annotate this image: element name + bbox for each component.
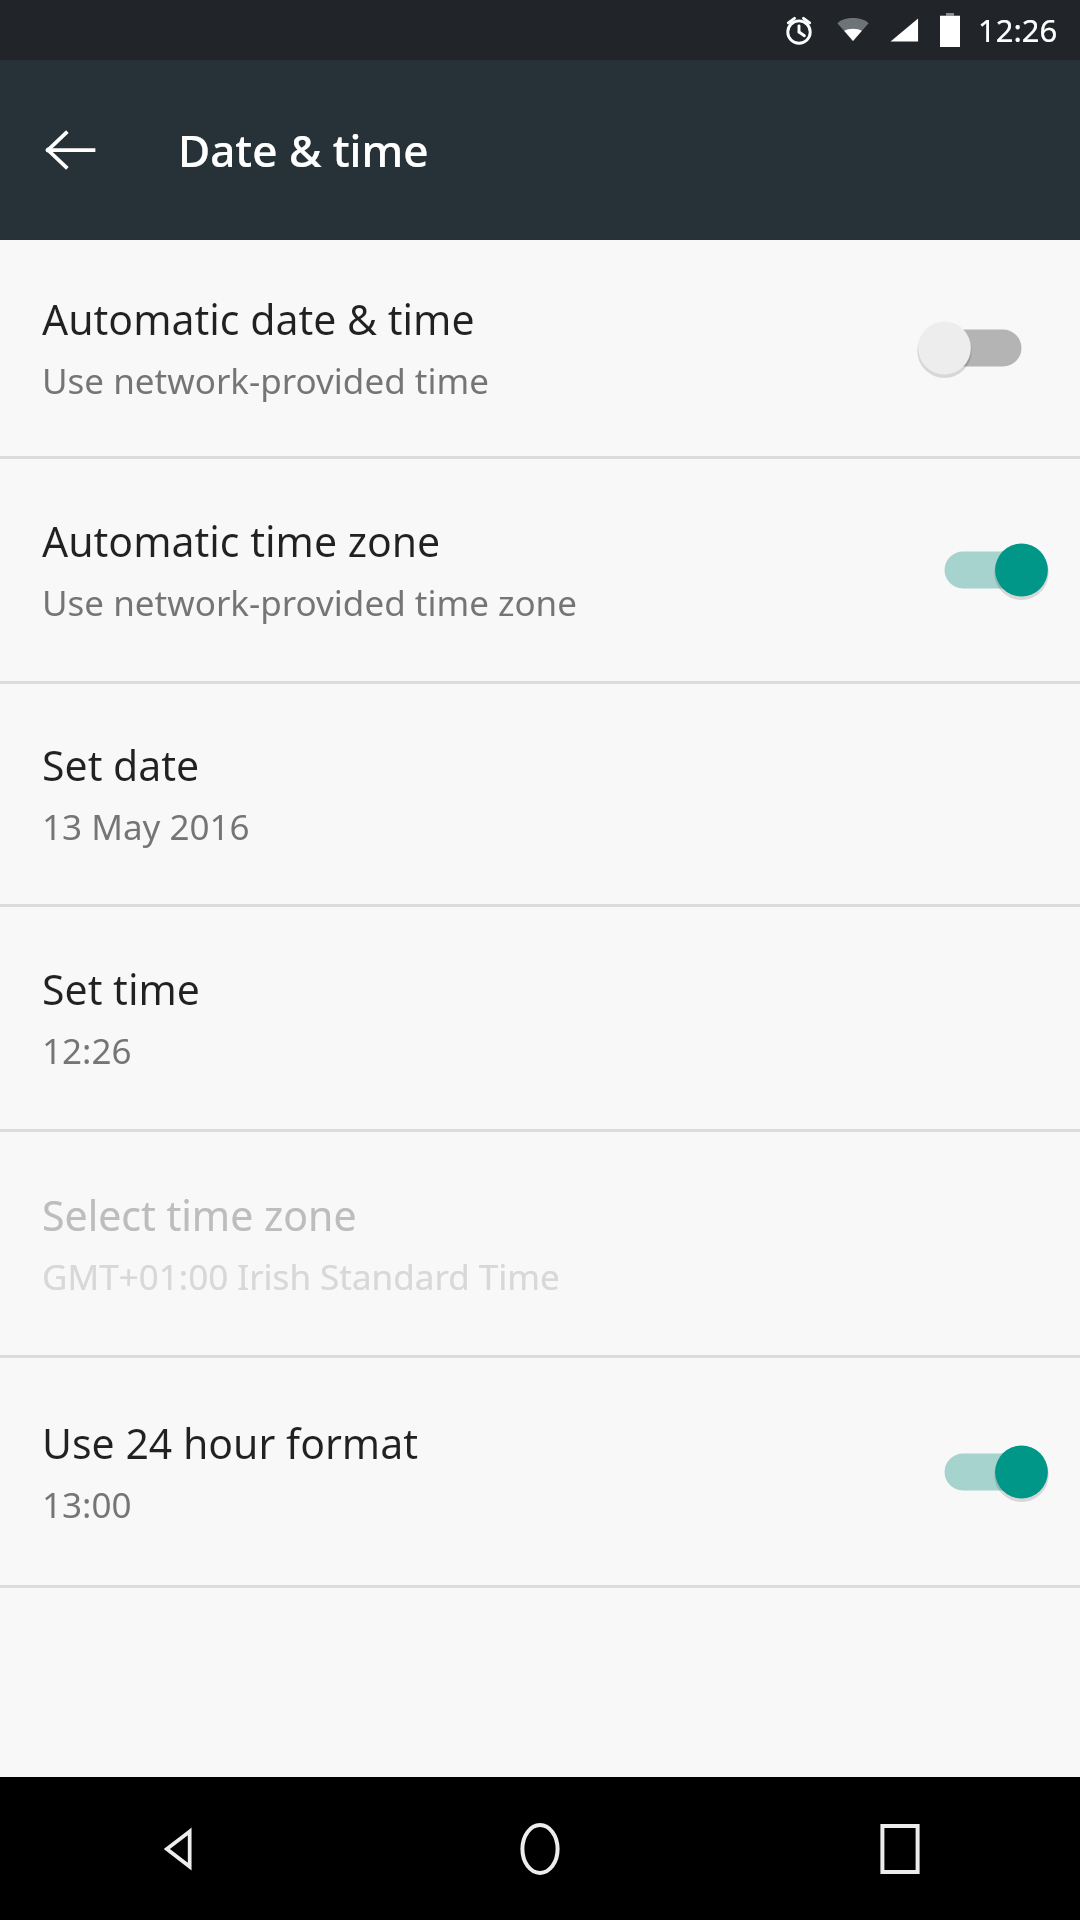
button[interactable]: Use 24 hour format (0, 1358, 1080, 1585)
staticText: Use network-provided time (42, 357, 489, 405)
button[interactable]: Select time zone (0, 1132, 1080, 1355)
button[interactable]: Set date (0, 684, 1080, 904)
staticText: GMT+01:00 Irish Standard Time (42, 1253, 560, 1301)
staticText: Select time zone (42, 1187, 357, 1243)
staticText: 13 May 2016 (42, 803, 250, 851)
staticText: Automatic time zone (42, 513, 441, 569)
button[interactable]: Off (928, 308, 1038, 388)
staticText: Use network-provided time zone (42, 579, 577, 627)
button[interactable]: Back (30, 110, 110, 190)
button[interactable]: On (928, 1432, 1038, 1512)
staticText: Set date (42, 737, 200, 793)
button[interactable]: Home (360, 1777, 720, 1920)
button[interactable]: On (928, 530, 1038, 610)
button[interactable]: Set time (0, 907, 1080, 1129)
staticText: 12:26 (978, 9, 1058, 51)
button[interactable]: Automatic date & time (0, 240, 1080, 456)
staticText: Set time (42, 961, 200, 1017)
staticText: Automatic date & time (42, 291, 475, 347)
button[interactable]: Recent apps (720, 1777, 1080, 1920)
staticText: Date & time (178, 120, 429, 180)
staticText: Use 24 hour format (42, 1415, 419, 1471)
button[interactable]: Back (0, 1777, 360, 1920)
staticText: 12:26 (42, 1027, 132, 1075)
button[interactable]: Automatic time zone (0, 459, 1080, 681)
staticText: 13:00 (42, 1481, 132, 1529)
